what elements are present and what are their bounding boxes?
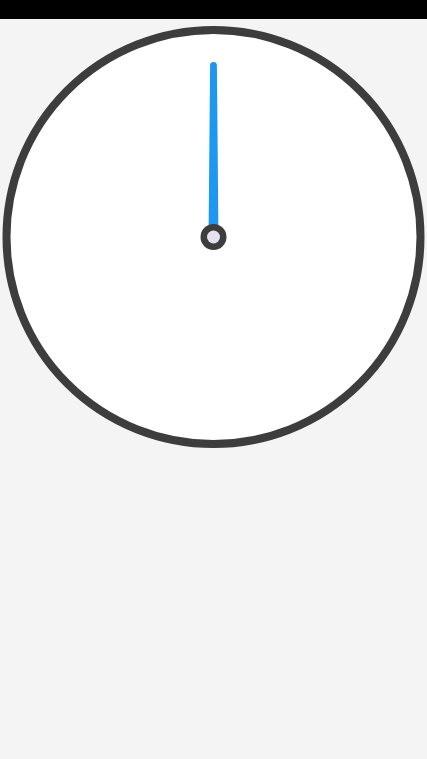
button[interactable]: Compass dial [0,19,427,459]
